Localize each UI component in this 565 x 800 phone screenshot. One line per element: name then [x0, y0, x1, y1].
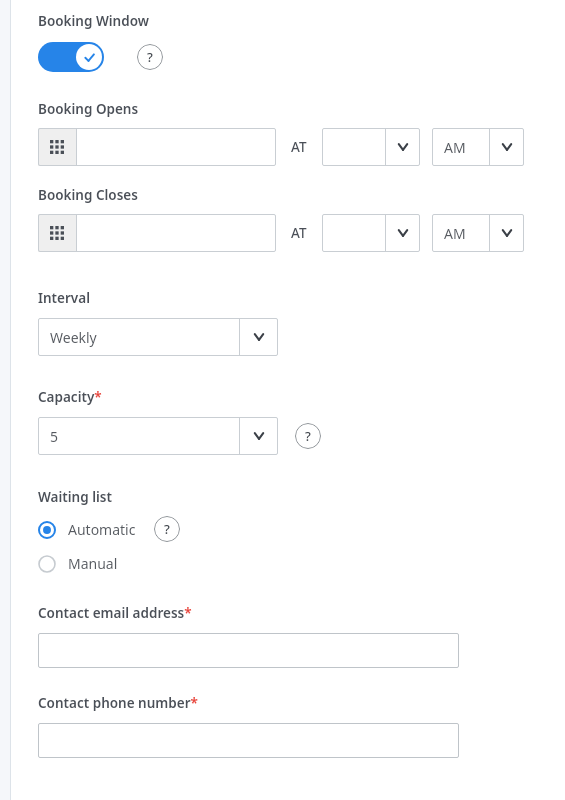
- staticText: Booking Opens: [38, 100, 139, 118]
- button[interactable]: Choose booking close date: [38, 214, 276, 252]
- button[interactable]: Booking window enabled: [38, 42, 104, 72]
- staticText: AT: [291, 138, 307, 156]
- staticText: AT: [291, 224, 307, 242]
- button[interactable]: Booking open meridiem: [432, 128, 524, 166]
- button[interactable]: Booking close time: [322, 214, 420, 252]
- staticText: Capacity*: [38, 388, 102, 406]
- staticText: ?: [147, 48, 153, 66]
- staticText: ?: [164, 520, 170, 538]
- button[interactable]: Manual: [38, 554, 118, 573]
- button[interactable]: Interval: [38, 318, 278, 356]
- staticText: ?: [305, 427, 311, 445]
- staticText: 5: [50, 427, 59, 446]
- button[interactable]: Contact phone number: [38, 723, 459, 758]
- staticText: Contact email address*: [38, 604, 192, 622]
- staticText: Waiting list: [38, 488, 112, 506]
- staticText: AM: [444, 224, 466, 243]
- button[interactable]: Automatic: [38, 520, 136, 539]
- staticText: Weekly: [50, 328, 97, 347]
- staticText: Automatic: [68, 520, 136, 539]
- button[interactable]: Capacity help: [295, 423, 321, 449]
- staticText: Contact phone number*: [38, 694, 198, 712]
- staticText: Manual: [68, 554, 118, 573]
- button[interactable]: Contact email address: [38, 633, 459, 668]
- button[interactable]: Capacity: [38, 417, 278, 455]
- staticText: Interval: [38, 289, 90, 307]
- button[interactable]: Booking window help: [137, 44, 163, 70]
- button[interactable]: Waiting list help: [154, 516, 180, 542]
- button[interactable]: Choose booking open date: [38, 128, 76, 166]
- button[interactable]: Choose booking close date: [38, 214, 76, 252]
- staticText: Booking Window: [38, 12, 149, 30]
- button[interactable]: Booking open time: [322, 128, 420, 166]
- button[interactable]: Choose booking open date: [38, 128, 276, 166]
- staticText: Booking Closes: [38, 186, 138, 204]
- staticText: AM: [444, 138, 466, 157]
- button[interactable]: Booking close meridiem: [432, 214, 524, 252]
